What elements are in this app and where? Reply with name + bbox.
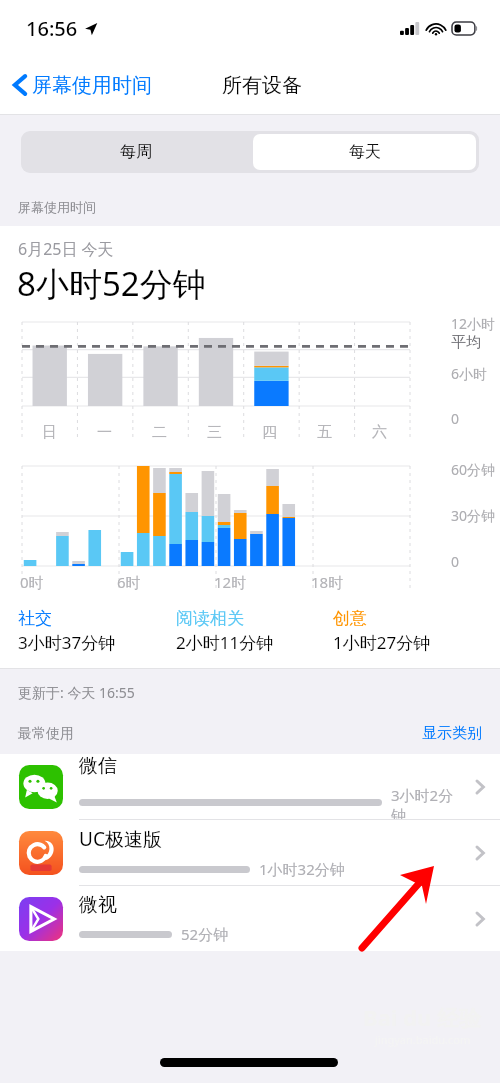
staticText: 一 <box>97 423 112 442</box>
staticText: 12小时 <box>451 314 496 333</box>
staticText: 显示类别 <box>422 724 482 743</box>
staticText: UC极速版 <box>79 826 162 852</box>
staticText: 3小时2分钟 <box>391 785 468 819</box>
staticText: 12时 <box>214 572 247 592</box>
staticText: 0 <box>451 409 460 428</box>
staticText: 平均 <box>451 333 481 352</box>
staticText: 社交 <box>18 608 52 629</box>
staticText: 30分钟 <box>451 506 496 525</box>
staticText: 6时 <box>117 572 141 592</box>
staticText: 二 <box>152 423 167 442</box>
staticText: 五 <box>317 423 332 442</box>
button[interactable]: 每天 <box>253 134 476 170</box>
staticText: 三 <box>207 423 222 442</box>
staticText: 微视 <box>79 893 117 917</box>
staticText: 六 <box>372 423 387 442</box>
staticText: 18时 <box>311 572 344 592</box>
staticText: 6小时 <box>451 364 488 383</box>
staticText: 0 <box>451 552 460 571</box>
staticText: 每天 <box>349 142 381 162</box>
staticText: 日 <box>42 423 57 442</box>
button[interactable]: 屏幕使用时间 <box>12 72 152 98</box>
staticText: 60分钟 <box>451 460 496 479</box>
staticText: 2小时11分钟 <box>176 631 274 654</box>
staticText: 6月25日 今天 <box>18 238 114 260</box>
staticText: 所有设备 <box>222 73 302 98</box>
button[interactable]: 显示类别 <box>422 724 482 743</box>
staticText: 更新于: 今天 16:55 <box>18 683 135 702</box>
staticText: 3小时37分钟 <box>18 631 116 654</box>
staticText: 1小时27分钟 <box>333 631 431 654</box>
staticText: 52分钟 <box>181 924 229 944</box>
staticText: 每周 <box>120 142 152 162</box>
button[interactable]: UC极速版 <box>0 820 500 885</box>
staticText: 0时 <box>20 572 44 592</box>
staticText: 1小时32分钟 <box>259 859 345 879</box>
staticText: 创意 <box>333 608 367 629</box>
staticText: 最常使用 <box>18 725 74 743</box>
button[interactable]: 微信 <box>0 754 500 819</box>
staticText: 屏幕使用时间 <box>32 73 152 98</box>
staticText: 阅读相关 <box>176 608 244 629</box>
staticText: 8小时52分钟 <box>17 261 206 306</box>
staticText: 微信 <box>79 754 117 778</box>
button[interactable]: 微视 <box>0 886 500 951</box>
staticText: 屏幕使用时间 <box>18 199 96 215</box>
staticText: 四 <box>262 423 277 442</box>
staticText: 16:56 <box>26 15 78 42</box>
button[interactable]: 每周 <box>21 131 250 173</box>
